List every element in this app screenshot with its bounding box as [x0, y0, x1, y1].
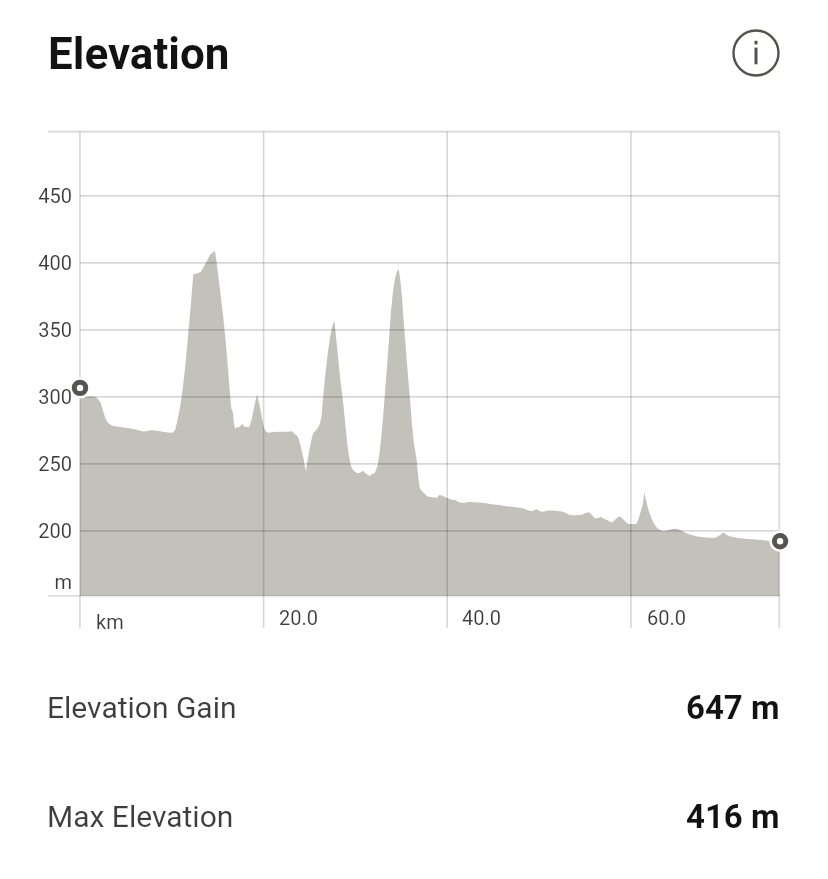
- staticText: 350: [38, 318, 72, 341]
- staticText: 250: [38, 452, 72, 475]
- staticText: km: [96, 610, 124, 633]
- staticText: m: [54, 570, 72, 593]
- staticText: 400: [38, 251, 72, 274]
- staticText: Elevation: [48, 28, 230, 80]
- button[interactable]: Max Elevation: [0, 772, 828, 860]
- button[interactable]: Info: [714, 11, 798, 95]
- staticText: 647 m: [686, 688, 780, 727]
- staticText: Max Elevation: [47, 799, 234, 834]
- staticText: 200: [38, 519, 72, 542]
- staticText: Elevation Gain: [47, 690, 237, 725]
- staticText: 40.0: [462, 606, 501, 629]
- staticText: 300: [38, 385, 72, 408]
- staticText: 60.0: [647, 606, 686, 629]
- staticText: 450: [38, 184, 72, 207]
- staticText: 416 m: [686, 797, 780, 836]
- button[interactable]: Elevation Gain: [0, 663, 828, 751]
- staticText: 20.0: [279, 606, 318, 629]
